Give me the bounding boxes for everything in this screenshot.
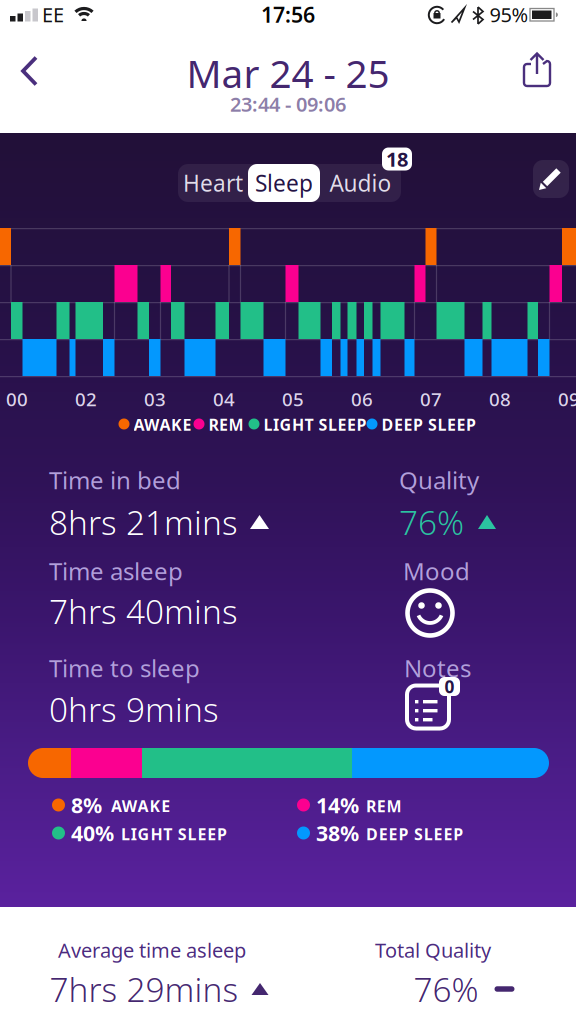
staticText: Quality <box>399 464 479 496</box>
staticText: 0 <box>444 675 454 698</box>
button[interactable] <box>406 589 454 637</box>
staticText: AWAKE <box>133 414 191 435</box>
staticText: 76% <box>399 500 464 544</box>
staticText: Mood <box>403 555 470 587</box>
staticText: 7hrs 29mins <box>49 967 238 1011</box>
staticText: REM <box>208 414 243 435</box>
staticText: Time asleep <box>49 555 183 587</box>
staticText: 0hrs 9mins <box>49 687 219 731</box>
staticText: Heart <box>183 168 243 198</box>
staticText: 14% <box>316 791 359 819</box>
staticText: Time to sleep <box>49 652 200 684</box>
staticText: 02 <box>75 387 97 411</box>
staticText: 8hrs 21mins <box>49 500 238 544</box>
button[interactable]: Sleep <box>248 164 320 202</box>
button[interactable] <box>21 54 45 88</box>
staticText: DEEP SLEEP <box>366 823 463 845</box>
staticText: 7hrs 40mins <box>49 589 238 633</box>
staticText: LIGHT SLEEP <box>121 823 227 845</box>
staticText: 00 <box>6 387 28 411</box>
button[interactable]: Heart <box>178 164 248 202</box>
staticText: Mar 24 - 25 <box>186 47 389 99</box>
staticText: 18 <box>386 146 408 172</box>
staticText: EE <box>42 1 64 28</box>
staticText: Average time asleep <box>58 937 246 963</box>
staticText: 07 <box>420 387 442 411</box>
staticText: 08 <box>489 387 511 411</box>
staticText: 40% <box>71 819 114 847</box>
staticText: DEEP SLEEP <box>381 414 476 435</box>
button[interactable] <box>520 52 556 92</box>
staticText: Time in bed <box>49 464 181 496</box>
staticText: 38% <box>316 819 359 847</box>
staticText: 09 <box>558 387 576 411</box>
button[interactable] <box>533 160 569 198</box>
staticText: AWAKE <box>111 795 170 817</box>
staticText: Audio <box>329 168 391 198</box>
staticText: Sleep <box>255 168 313 198</box>
staticText: 06 <box>351 387 373 411</box>
staticText: LIGHT SLEEP <box>263 414 366 435</box>
staticText: Notes <box>404 652 471 684</box>
button[interactable]: 0 <box>406 677 462 729</box>
staticText: Total Quality <box>375 937 491 963</box>
staticText: 8% <box>71 791 102 819</box>
staticText: 23:44 - 09:06 <box>230 91 346 117</box>
staticText: 03 <box>144 387 166 411</box>
staticText: 04 <box>213 387 235 411</box>
staticText: REM <box>366 795 402 817</box>
button[interactable]: Audio <box>320 164 400 202</box>
staticText: 95% <box>489 1 528 28</box>
staticText: 05 <box>282 387 304 411</box>
staticText: 17:56 <box>261 0 315 29</box>
staticText: 76% <box>413 967 478 1011</box>
